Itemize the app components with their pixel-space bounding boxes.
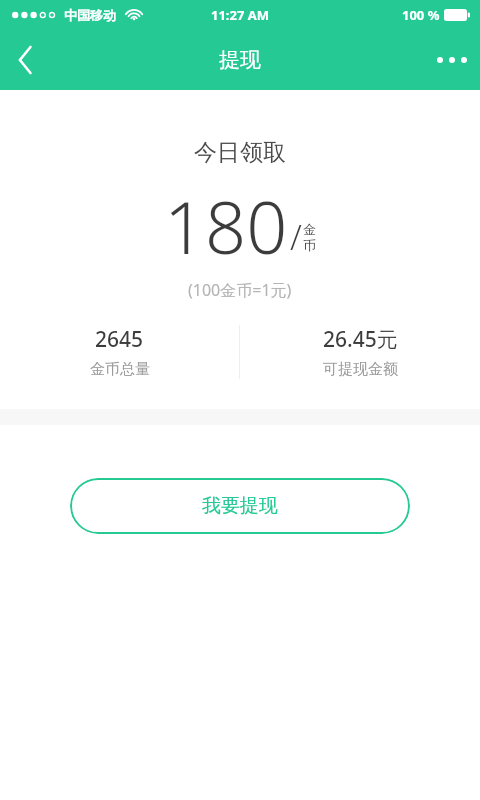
staticText: 180	[164, 177, 288, 275]
button[interactable]: More options	[424, 32, 480, 88]
staticText: 中国移动	[64, 7, 116, 23]
staticText: 2645	[95, 325, 144, 354]
staticText: 币	[303, 237, 316, 253]
staticText: 金币总量	[90, 360, 150, 379]
staticText: 我要提现	[202, 494, 278, 518]
button[interactable]: 我要提现	[70, 478, 410, 534]
staticText: 金	[303, 221, 316, 237]
button[interactable]: 26.45元	[240, 323, 480, 381]
staticText: /	[290, 214, 302, 260]
staticText: 可提现金额	[323, 360, 398, 379]
button[interactable]: Back	[0, 34, 52, 86]
staticText: (100金币=1元)	[188, 279, 292, 301]
staticText: 100 %	[402, 6, 440, 24]
button[interactable]: 2645	[0, 323, 239, 381]
staticText: 11:27 AM	[211, 6, 270, 24]
staticText: 提现	[219, 47, 261, 73]
staticText: 26.45元	[323, 325, 398, 354]
staticText: 今日领取	[194, 138, 286, 167]
